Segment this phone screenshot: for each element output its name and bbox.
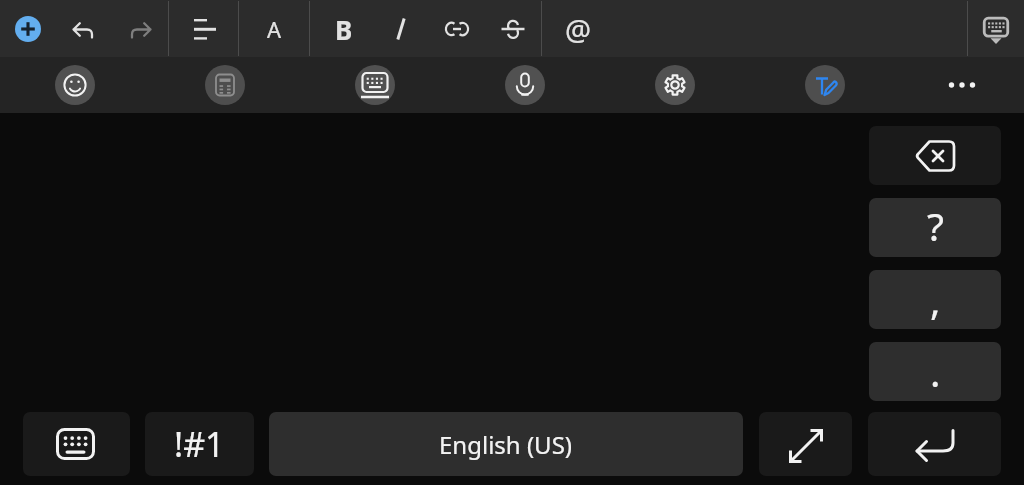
staticText: ? [927,199,944,252]
staticText: A [267,14,282,44]
button[interactable]: Hide keyboard [972,5,1020,53]
staticText: B [335,12,353,47]
staticText: , [930,273,941,326]
button[interactable]: Voice input [505,65,545,105]
button[interactable]: A [252,7,296,51]
button[interactable]: Undo [62,7,106,51]
staticText: English (US) [439,428,573,461]
button[interactable]: Handwriting [805,65,845,105]
button[interactable]: !#1 [145,412,254,476]
button[interactable]: Switch keyboard [23,412,130,476]
button[interactable]: Emoji [55,65,95,105]
button[interactable]: English (US) [269,412,743,476]
button[interactable]: Add [6,7,50,51]
staticText: @ [565,10,592,49]
button[interactable]: ? [869,198,1001,257]
button[interactable]: Resize keyboard [759,412,852,476]
button[interactable]: Link [435,7,479,51]
button[interactable]: Enter [868,412,1001,476]
staticText: !#1 [174,421,225,467]
button[interactable]: Calculator [205,65,245,105]
button[interactable]: Backspace [869,126,1001,185]
button[interactable]: Align [181,7,225,51]
button[interactable]: , [869,270,1001,329]
button[interactable]: Keyboard [355,65,395,105]
button[interactable]: . [869,342,1001,401]
button[interactable]: Strikethrough [491,7,535,51]
button[interactable]: B [322,7,366,51]
button[interactable]: More options [940,63,984,107]
button[interactable]: Redo [118,7,162,51]
staticText: . [930,345,941,398]
button[interactable]: Settings [655,65,695,105]
button[interactable]: Italic [379,7,423,51]
button[interactable]: @ [556,7,600,51]
